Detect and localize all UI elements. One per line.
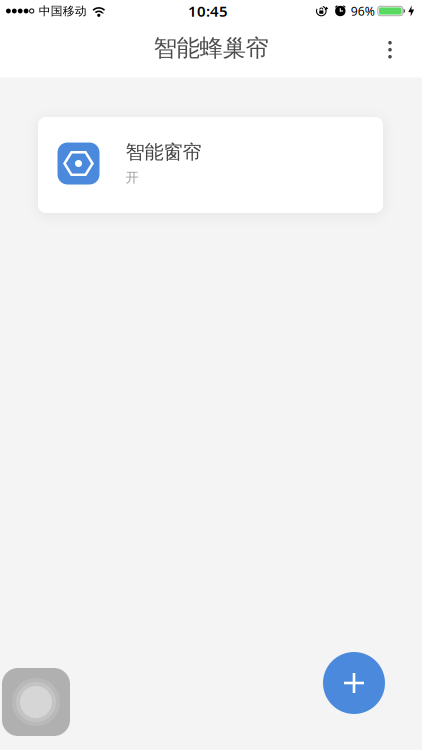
staticText: 智能窗帘 <box>125 140 201 164</box>
staticText: 中国移动 <box>39 4 87 18</box>
button[interactable]: AssistiveTouch <box>2 668 70 736</box>
staticText: 智能蜂巢帘 <box>153 33 268 63</box>
staticText: 开 <box>125 169 138 186</box>
button[interactable]: More options <box>370 28 410 72</box>
staticText: 96% <box>351 3 375 19</box>
button[interactable]: 智能窗帘 <box>38 117 383 213</box>
button[interactable]: Add device <box>323 652 385 714</box>
staticText: 10:45 <box>188 1 228 21</box>
